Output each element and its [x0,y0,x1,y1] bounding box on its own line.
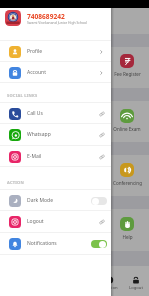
staticText: Profile [27,48,43,55]
button[interactable]: Whatsapp [0,124,111,145]
other: Link [99,219,105,225]
staticText: Whatsapp [27,131,51,138]
other: Link [99,154,105,160]
other: Link [99,132,105,138]
staticText: ation [107,285,118,291]
staticText: Swami Vivekanand Junior High School [27,20,88,25]
other: Open [98,70,104,76]
button[interactable]: Call Us [0,103,111,124]
staticText: Conferencing [113,180,142,186]
staticText: Logout [27,218,44,225]
button[interactable]: Help [97,217,149,240]
staticText: E-Mail [27,153,42,160]
button[interactable]: Account [0,62,111,83]
staticText: 7408689242 [27,12,65,21]
other: Link [99,111,105,117]
button[interactable]: Conferencing [97,163,149,186]
button[interactable]: Off [91,197,107,205]
staticText: Help [122,234,133,240]
button[interactable]: ation [100,276,124,291]
button[interactable]: 7408689242 [0,0,111,40]
staticText: SOCIAL LINKS [7,93,38,98]
button[interactable]: Dark Mode [0,190,111,211]
button[interactable]: Logout [0,211,111,232]
button[interactable]: Notifications [0,233,111,254]
staticText: Call Us [27,110,43,117]
staticText: ACTION [7,180,25,185]
staticText: Logout [129,285,143,291]
staticText: Fee Register [114,71,141,77]
button[interactable]: Logout [124,276,148,291]
staticText: Notifications [27,240,57,247]
other: Open [98,49,104,55]
staticText: Account [27,69,47,76]
button[interactable]: On [91,240,107,248]
staticText: Online Exam [113,126,141,132]
staticText: Dark Mode [27,197,53,204]
button[interactable]: E-Mail [0,146,111,167]
button[interactable]: Fee Register [97,54,149,77]
button[interactable]: Online Exam [97,109,149,132]
button[interactable]: Profile [0,41,111,62]
